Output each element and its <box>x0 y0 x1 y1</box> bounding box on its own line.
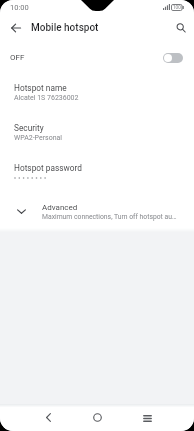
button[interactable]: Recent apps <box>132 405 162 431</box>
staticText: 100 <box>173 5 181 10</box>
staticText: Advanced <box>42 203 78 212</box>
button[interactable]: Back <box>4 16 27 39</box>
staticText: Maximum connections, Turn off hotspot au… <box>42 213 177 221</box>
staticText: Alcatel 1S 76236002 <box>14 94 79 102</box>
staticText: Hotspot name <box>14 83 67 93</box>
button[interactable]: Security <box>0 112 194 152</box>
button[interactable]: Home <box>82 404 112 431</box>
staticText: WPA2-Personal <box>14 134 63 142</box>
button[interactable]: Back <box>33 404 63 431</box>
staticText: 10:00 <box>10 3 29 12</box>
staticText: OFF <box>10 53 25 62</box>
button[interactable]: Hotspot name <box>0 72 194 112</box>
staticText: Mobile hotspot <box>31 22 99 34</box>
staticText: Security <box>14 123 44 133</box>
button[interactable]: Advanced <box>0 192 194 228</box>
button[interactable]: Search <box>169 16 192 39</box>
button[interactable]: Hotspot password <box>0 152 194 192</box>
button[interactable]: OFF <box>0 43 194 72</box>
staticText: Hotspot password <box>14 163 82 173</box>
